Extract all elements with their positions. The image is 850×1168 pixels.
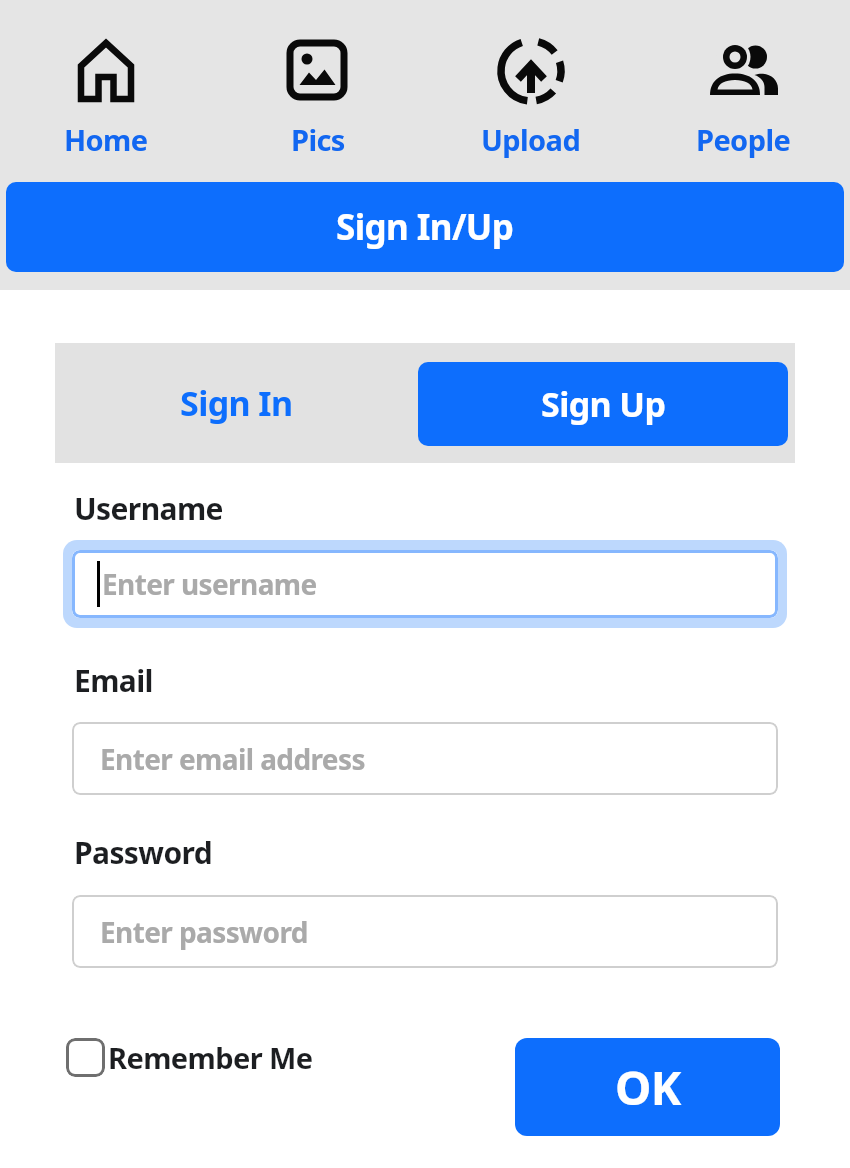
staticText: Home [64,120,148,159]
staticText: Email [74,660,153,701]
button[interactable]: Enter email address [72,722,778,795]
staticText: OK [615,1056,681,1119]
staticText: Password [74,832,213,873]
staticText: Enter password [100,913,308,951]
button[interactable]: Enter username [72,550,778,618]
button[interactable]: OK [515,1038,780,1136]
button[interactable]: Pics [212,36,424,159]
staticText: People [696,120,791,159]
button[interactable]: Remember Me [66,1038,313,1077]
button[interactable]: Sign Up [418,362,788,446]
staticText: Remember Me [108,1038,313,1077]
button[interactable]: People [637,36,850,159]
staticText: Sign Up [541,381,666,427]
button[interactable]: Sign In/Up [6,182,844,272]
staticText: Pics [291,120,345,159]
staticText: Enter username [102,565,317,603]
button[interactable]: Sign In [55,343,418,463]
staticText: Username [74,488,223,529]
staticText: Sign In/Up [336,203,514,251]
button[interactable]: Upload [424,36,637,159]
button[interactable]: Enter password [72,895,778,968]
staticText: Sign In [180,380,293,426]
staticText: Enter email address [100,740,365,778]
staticText: Upload [481,120,581,159]
button[interactable]: Home [0,36,212,159]
